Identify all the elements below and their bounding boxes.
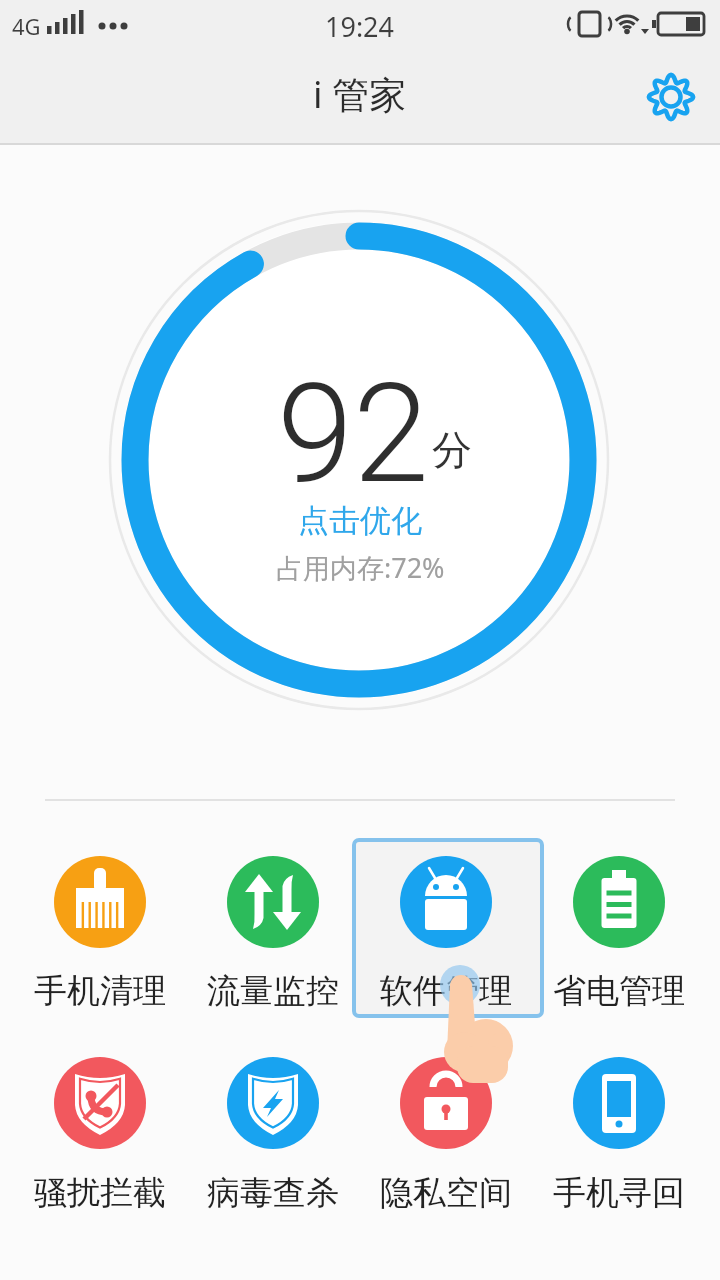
button[interactable] — [187, 840, 360, 1016]
staticText: 手机寻回 — [553, 1172, 685, 1214]
staticText: 92 — [277, 354, 429, 515]
staticText: 病毒查杀 — [207, 1172, 339, 1214]
button[interactable] — [360, 840, 533, 1016]
staticText: 4G — [12, 11, 41, 41]
button[interactable] — [360, 1042, 533, 1218]
staticText: 省电管理 — [553, 970, 685, 1012]
staticText: 点击优化 — [298, 501, 422, 540]
staticText: 隐私空间 — [380, 1172, 512, 1214]
staticText: 手机清理 — [34, 970, 166, 1012]
staticText: 19:24 — [325, 8, 395, 40]
button[interactable] — [533, 1042, 706, 1218]
staticText: 流量监控 — [207, 970, 339, 1012]
button[interactable] — [14, 840, 187, 1016]
button[interactable] — [645, 71, 697, 123]
staticText: i 管家 — [313, 68, 407, 118]
staticText: 软件管理 — [380, 970, 512, 1012]
staticText: 骚扰拦截 — [34, 1172, 166, 1214]
button[interactable] — [533, 840, 706, 1016]
button[interactable] — [122, 223, 596, 697]
button[interactable] — [14, 1042, 187, 1218]
button[interactable] — [187, 1042, 360, 1218]
staticText: 分 — [432, 425, 472, 475]
staticText: 占用内存:72% — [276, 549, 445, 586]
